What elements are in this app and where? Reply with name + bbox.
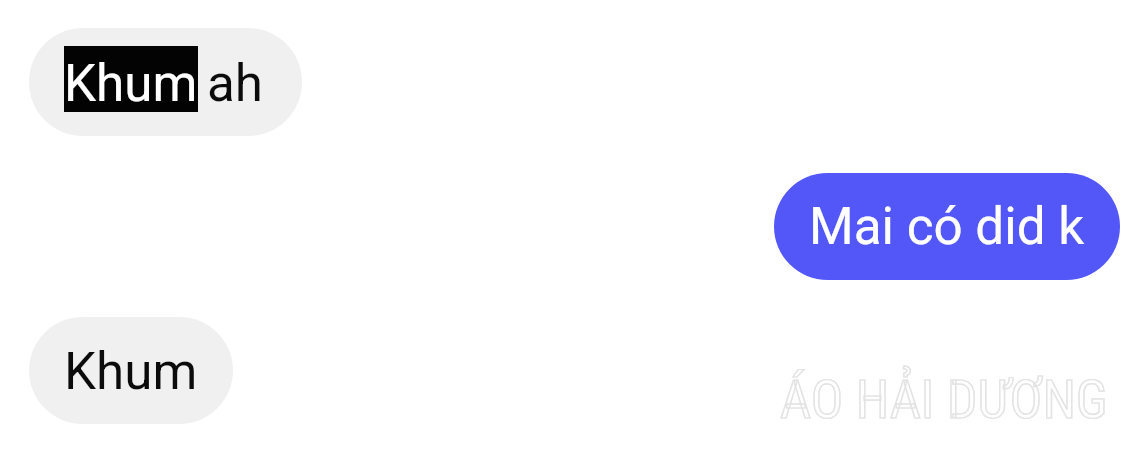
button[interactable]: Khum bbox=[29, 317, 233, 424]
staticText: Khum bbox=[64, 53, 198, 113]
staticText: ÁO HẢI DƯƠNG bbox=[780, 368, 1108, 431]
staticText: Khum bbox=[64, 341, 198, 401]
button[interactable]: Khum bbox=[29, 28, 302, 136]
button[interactable]: Mai có did k bbox=[774, 173, 1120, 280]
staticText: Mai có did k bbox=[809, 196, 1085, 256]
staticText: ah bbox=[207, 53, 264, 113]
